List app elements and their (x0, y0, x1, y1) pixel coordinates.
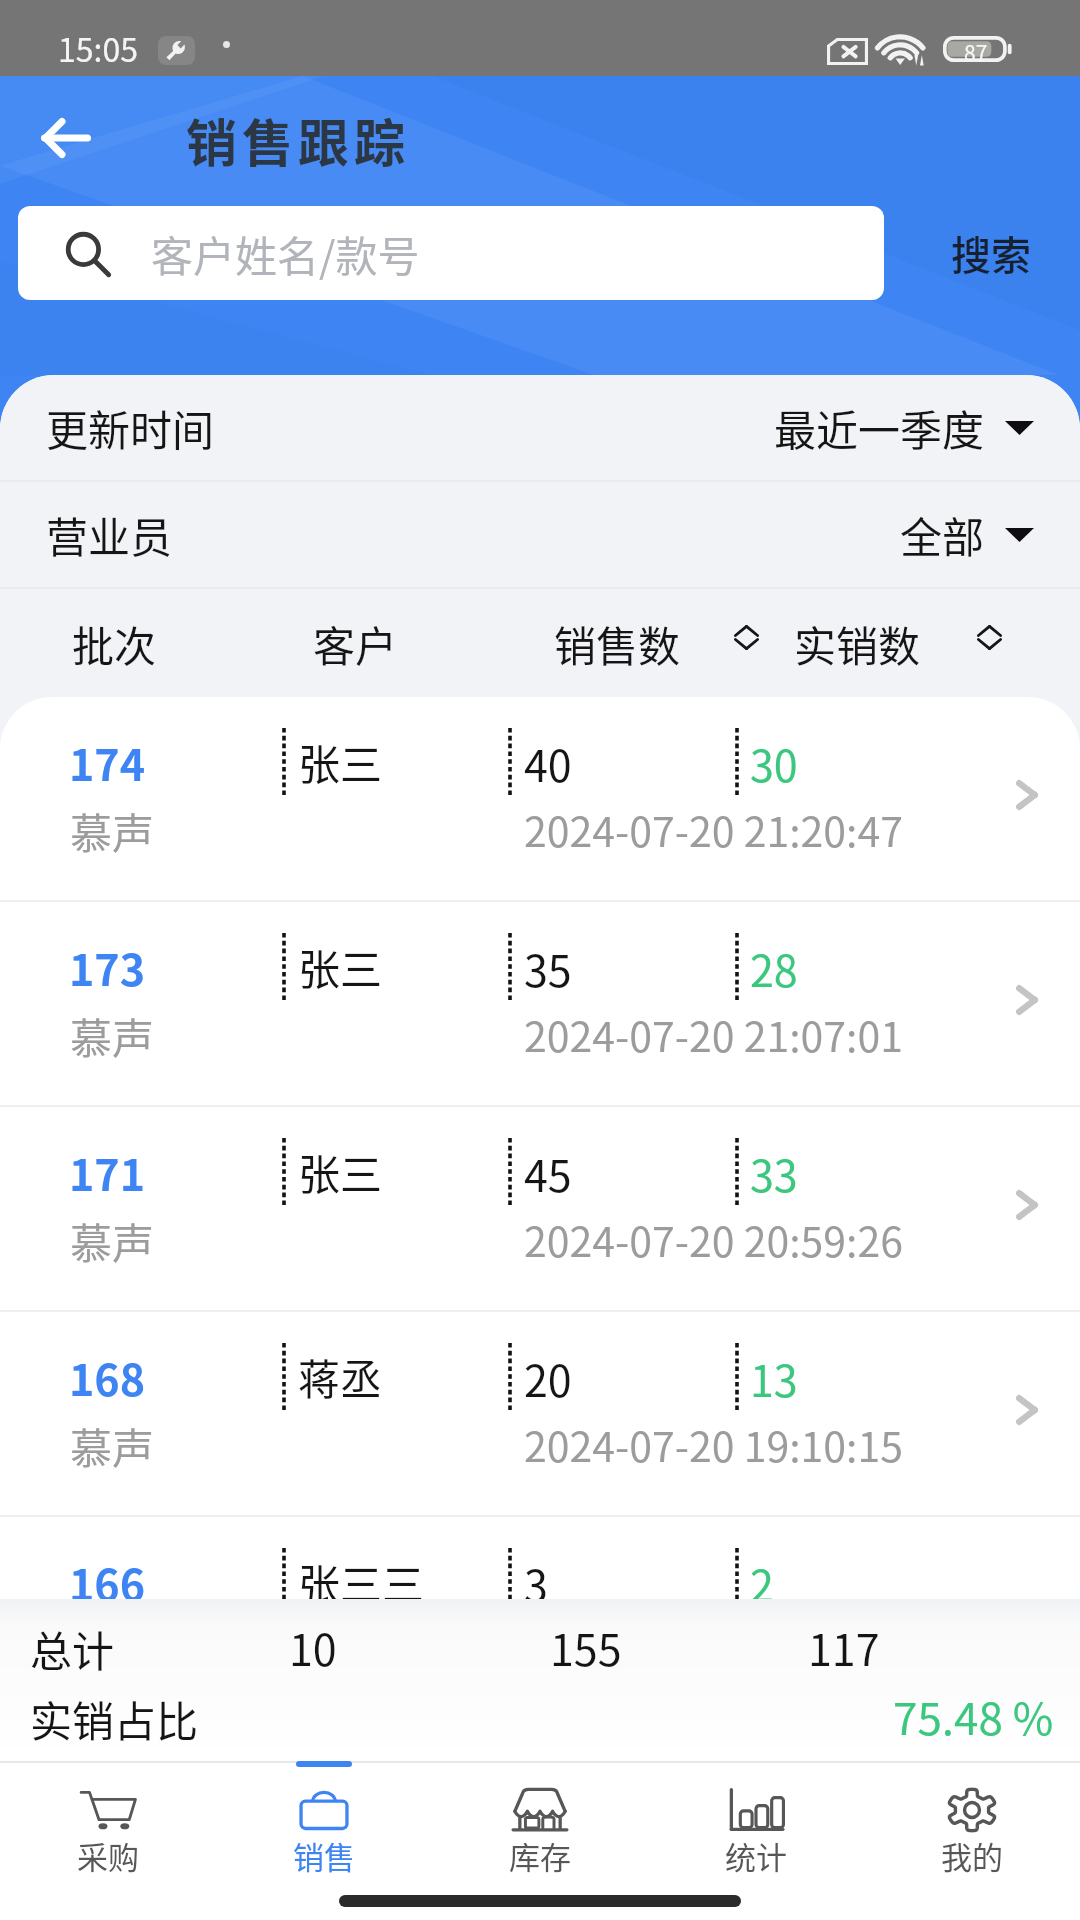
staticText: 慕声 (70, 800, 155, 861)
staticText: 40 (524, 732, 572, 794)
staticText: 慕声 (70, 1005, 155, 1066)
staticText: 75.48 % (893, 1684, 1054, 1748)
staticText: 2 (750, 1552, 774, 1614)
staticText: 155 (550, 1616, 622, 1678)
staticText: 168 (69, 1346, 146, 1408)
staticText: 我的 (941, 1833, 1003, 1878)
staticText: 张三三 (298, 1551, 425, 1612)
staticText: 客户 (313, 613, 398, 674)
staticText: 张三 (298, 1141, 383, 1202)
staticText: 10 (289, 1616, 337, 1678)
button[interactable]: 166 (0, 1517, 1080, 1720)
staticText: 35 (524, 937, 572, 999)
staticText: 库存 (509, 1833, 571, 1878)
staticText: 销售 (293, 1833, 355, 1878)
staticText: 搜索 (951, 224, 1031, 282)
staticText: 45 (524, 1142, 572, 1204)
staticText: 销售数 (554, 613, 681, 674)
staticText: 33 (750, 1142, 798, 1204)
button[interactable]: 统计 (648, 1763, 864, 1886)
staticText: 销售跟踪 (186, 103, 411, 177)
staticText: 张三 (298, 936, 383, 997)
staticText: 13 (750, 1347, 798, 1409)
staticText: 营业员 (46, 504, 173, 565)
staticText: 批次 (72, 613, 157, 674)
staticText: 117 (808, 1616, 880, 1678)
staticText: 实销占比 (30, 1688, 199, 1749)
staticText: 客户姓名/款号 (151, 223, 420, 284)
staticText: 2024-07-20 21:20:47 (524, 799, 904, 858)
button[interactable]: 173 (0, 902, 1080, 1105)
staticText: 全部 (900, 504, 985, 565)
staticText: 2024-07-20 20:59:26 (524, 1209, 904, 1268)
staticText: 采购 (77, 1833, 139, 1878)
staticText: 174 (69, 731, 146, 793)
staticText: 最近一季度 (774, 397, 985, 458)
button[interactable]: 库存 (432, 1763, 648, 1886)
staticText: 3 (524, 1552, 548, 1614)
button[interactable]: 更新时间 (0, 375, 1080, 480)
button[interactable]: 168 (0, 1312, 1080, 1515)
staticText: 统计 (725, 1833, 787, 1878)
button[interactable]: 销售 (216, 1763, 432, 1886)
staticText: 20 (524, 1347, 572, 1409)
staticText: 2024-07-20 19:10:15 (524, 1414, 904, 1473)
staticText: 30 (750, 732, 798, 794)
button[interactable]: 搜索 (927, 206, 1055, 300)
staticText: 28 (750, 937, 798, 999)
staticText: 15:05 (58, 25, 138, 71)
staticText: 实销数 (794, 613, 921, 674)
staticText: 慕声 (70, 1620, 155, 1681)
button[interactable]: 171 (0, 1107, 1080, 1310)
staticText: 更新时间 (46, 397, 215, 458)
staticText: 慕声 (70, 1415, 155, 1476)
button[interactable]: 我的 (864, 1763, 1080, 1886)
staticText: 总计 (30, 1618, 115, 1679)
staticText: 166 (69, 1551, 146, 1613)
staticText: 慕声 (70, 1210, 155, 1271)
staticText: 171 (69, 1141, 146, 1203)
staticText: 87 (964, 37, 988, 63)
button[interactable]: 客户姓名/款号 (18, 206, 884, 300)
staticText: 2024-07-20 21:07:01 (524, 1004, 904, 1063)
staticText: 张三 (298, 731, 383, 792)
staticText: 173 (69, 936, 146, 998)
button[interactable]: 采购 (0, 1763, 216, 1886)
button[interactable]: 营业员 (0, 482, 1080, 587)
staticText: 2024-07-20 18:22:10 (524, 1619, 904, 1678)
button[interactable]: Back (8, 86, 124, 190)
button[interactable]: 174 (0, 697, 1080, 900)
staticText: 蒋丞 (298, 1346, 383, 1407)
